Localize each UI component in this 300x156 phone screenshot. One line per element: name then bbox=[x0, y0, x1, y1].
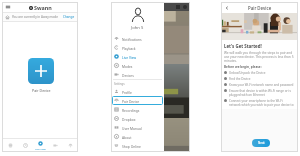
staticText: Find the Device bbox=[229, 77, 251, 81]
staticText: Pair Device bbox=[32, 88, 51, 93]
button[interactable]: You are currently in Away mode bbox=[2, 13, 78, 21]
staticText: Devices bbox=[122, 73, 134, 77]
staticText: Next bbox=[258, 141, 265, 145]
staticText: About bbox=[122, 135, 132, 139]
staticText: Connect your smartphone to the Wi-Fi net… bbox=[229, 99, 294, 107]
staticText: Settings bbox=[114, 82, 125, 86]
button[interactable]: Next bbox=[252, 139, 270, 147]
staticText: Let's Get Started! bbox=[224, 43, 262, 49]
button[interactable]: Dropbox bbox=[111, 114, 164, 123]
button[interactable]: Modes bbox=[2, 139, 18, 152]
staticText: Shop Online bbox=[122, 144, 141, 148]
staticText: Pair Device bbox=[248, 5, 272, 11]
button[interactable]: Pair Device bbox=[112, 96, 163, 105]
button[interactable]: Shop Online bbox=[111, 141, 164, 150]
staticText: Swann bbox=[34, 4, 52, 11]
staticText: John S bbox=[131, 25, 144, 31]
staticText: Live View bbox=[122, 55, 137, 59]
button[interactable]: Alerts bbox=[63, 139, 78, 152]
button[interactable]: Recordings bbox=[111, 105, 164, 114]
button[interactable]: Notifications bbox=[111, 34, 164, 43]
staticText: Live View bbox=[35, 147, 46, 150]
staticText: You are currently in Away mode bbox=[12, 15, 58, 19]
button[interactable]: Back bbox=[224, 5, 230, 11]
staticText: User Manual bbox=[122, 126, 142, 130]
button[interactable]: Devices bbox=[111, 70, 164, 79]
staticText: We will walk you through the steps to pa… bbox=[224, 51, 294, 63]
staticText: Unbox/Unpack the Device bbox=[229, 71, 266, 75]
button[interactable]: User Manual bbox=[111, 123, 164, 132]
staticText: Playback bbox=[122, 46, 136, 50]
staticText: Recordings bbox=[122, 108, 140, 112]
staticText: Modes bbox=[122, 64, 133, 68]
staticText: Notifications bbox=[122, 37, 142, 41]
staticText: Profile bbox=[122, 90, 132, 94]
button[interactable]: Playback bbox=[111, 43, 164, 52]
button[interactable]: About bbox=[111, 132, 164, 141]
button[interactable]: Settings bbox=[183, 5, 187, 9]
staticText: Know your Wi-Fi network name and passwor… bbox=[229, 83, 294, 87]
staticText: Change bbox=[63, 15, 75, 19]
staticText: Pair Device bbox=[122, 99, 140, 103]
staticText: Ensure that device is within Wi-Fi range… bbox=[229, 89, 294, 97]
staticText: Dropbox bbox=[122, 117, 136, 121]
button[interactable]: Profile bbox=[111, 87, 164, 96]
button[interactable]: Pair Device bbox=[28, 58, 54, 84]
button[interactable]: Live View bbox=[111, 52, 164, 61]
button[interactable]: Menu bbox=[5, 4, 11, 10]
staticText: Before we begin, please: bbox=[224, 65, 262, 69]
button[interactable]: Live View bbox=[33, 139, 48, 152]
button[interactable]: Modes bbox=[111, 61, 164, 70]
button[interactable]: Playback bbox=[18, 139, 33, 152]
button[interactable]: Devices bbox=[48, 139, 63, 152]
